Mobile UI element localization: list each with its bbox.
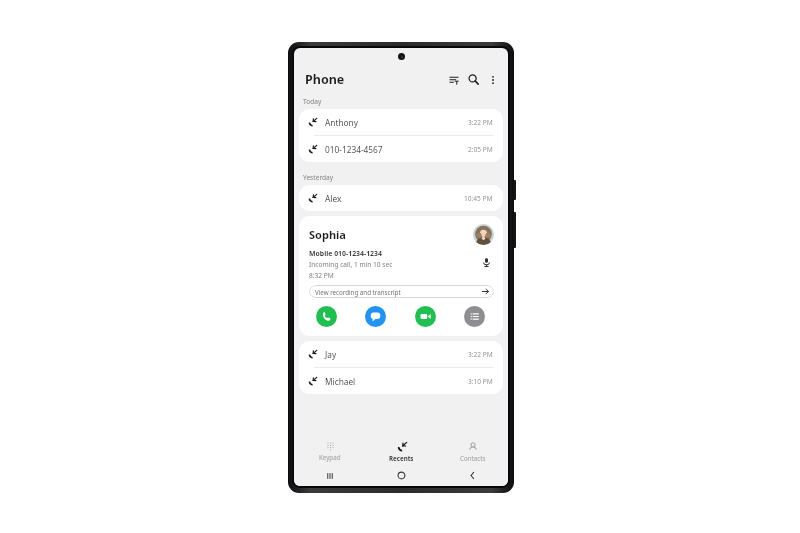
staticText: 3:10 PM [468, 377, 493, 386]
staticText: 010-1234-4567 [325, 144, 383, 155]
button[interactable]: More options [484, 71, 501, 88]
staticText: Michael [325, 376, 356, 387]
staticText: Jay [325, 349, 337, 360]
button[interactable]: Michael [299, 368, 503, 394]
staticText: Incoming call, 1 min 10 sec [309, 260, 393, 269]
button[interactable]: Keypad [294, 438, 366, 465]
button[interactable]: Contacts [437, 438, 508, 465]
staticText: 8:32 PM [309, 271, 334, 280]
button[interactable]: 010-1234-4567 [299, 136, 503, 162]
staticText: 3:22 PM [468, 118, 493, 127]
button[interactable]: Sort [445, 71, 462, 88]
button[interactable]: Jay [299, 341, 503, 367]
staticText: Alex [325, 193, 342, 204]
staticText: Today [303, 97, 322, 106]
button[interactable]: Recent apps [294, 465, 366, 486]
button[interactable]: Home [366, 465, 437, 486]
staticText: Keypad [319, 453, 341, 461]
staticText: View recording and transcript [315, 288, 401, 296]
staticText: Anthony [325, 117, 358, 128]
button[interactable]: Anthony [299, 109, 503, 135]
staticText: 2:05 PM [468, 145, 493, 154]
button[interactable]: View recording and transcript [309, 285, 494, 298]
button[interactable]: Call [316, 306, 337, 327]
staticText: 3:22 PM [468, 350, 493, 359]
staticText: Yesterday [303, 173, 334, 182]
button[interactable]: Back [437, 465, 508, 486]
staticText: Sophia [309, 227, 346, 242]
button[interactable]: Play recording [478, 254, 494, 270]
staticText: Mobile 010-1234-1234 [309, 249, 382, 258]
button[interactable]: Contact photo [473, 224, 494, 245]
button[interactable]: Video call [415, 306, 436, 327]
button[interactable]: Recents [366, 438, 437, 465]
button[interactable]: Sophia [299, 216, 503, 336]
staticText: Contacts [460, 454, 486, 462]
button[interactable]: Message [365, 306, 386, 327]
staticText: Recents [389, 454, 414, 462]
staticText: Phone [305, 71, 345, 88]
button[interactable]: Search [465, 71, 482, 88]
button[interactable]: Alex [299, 185, 503, 211]
button[interactable]: More options [464, 306, 485, 327]
staticText: 10:45 PM [464, 194, 493, 203]
